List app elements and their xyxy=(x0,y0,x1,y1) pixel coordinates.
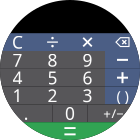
button[interactable]: Delete xyxy=(105,33,140,51)
staticText: 7 xyxy=(12,48,22,71)
staticText: 0 xyxy=(65,102,75,125)
button[interactable]: 3 xyxy=(70,87,105,104)
button[interactable]: 9 xyxy=(70,51,105,69)
staticText: 1 xyxy=(12,84,22,107)
staticText: 4 xyxy=(12,66,22,89)
staticText: 6 xyxy=(82,66,92,89)
button[interactable]: Equals xyxy=(0,122,140,140)
staticText: C xyxy=(12,31,23,54)
staticText: 8 xyxy=(47,48,57,71)
button[interactable]: Divide xyxy=(35,33,70,51)
button[interactable]: 1 xyxy=(0,87,35,104)
button[interactable]: C xyxy=(0,33,35,51)
button[interactable]: Plus xyxy=(105,69,140,87)
button[interactable]: 8 xyxy=(35,51,70,69)
button[interactable]: . xyxy=(0,104,52,122)
staticText: ( ) xyxy=(116,86,128,105)
button[interactable]: Multiply xyxy=(70,33,105,51)
button[interactable]: 4 xyxy=(0,69,35,87)
button[interactable]: 7 xyxy=(0,51,35,69)
button[interactable]: Minus xyxy=(105,51,140,69)
button[interactable]: +/− xyxy=(87,104,140,122)
button[interactable]: 0 xyxy=(52,104,87,122)
staticText: 5 xyxy=(47,66,57,89)
staticText: +/− xyxy=(103,104,124,122)
button[interactable]: 2 xyxy=(35,87,70,104)
button[interactable]: 6 xyxy=(70,69,105,87)
staticText: 3 xyxy=(82,84,92,107)
button[interactable]: ( ) xyxy=(105,87,140,104)
staticText: 9 xyxy=(82,48,92,71)
staticText: 2 xyxy=(47,84,57,107)
button[interactable]: 5 xyxy=(35,69,70,87)
staticText: . xyxy=(24,102,29,125)
